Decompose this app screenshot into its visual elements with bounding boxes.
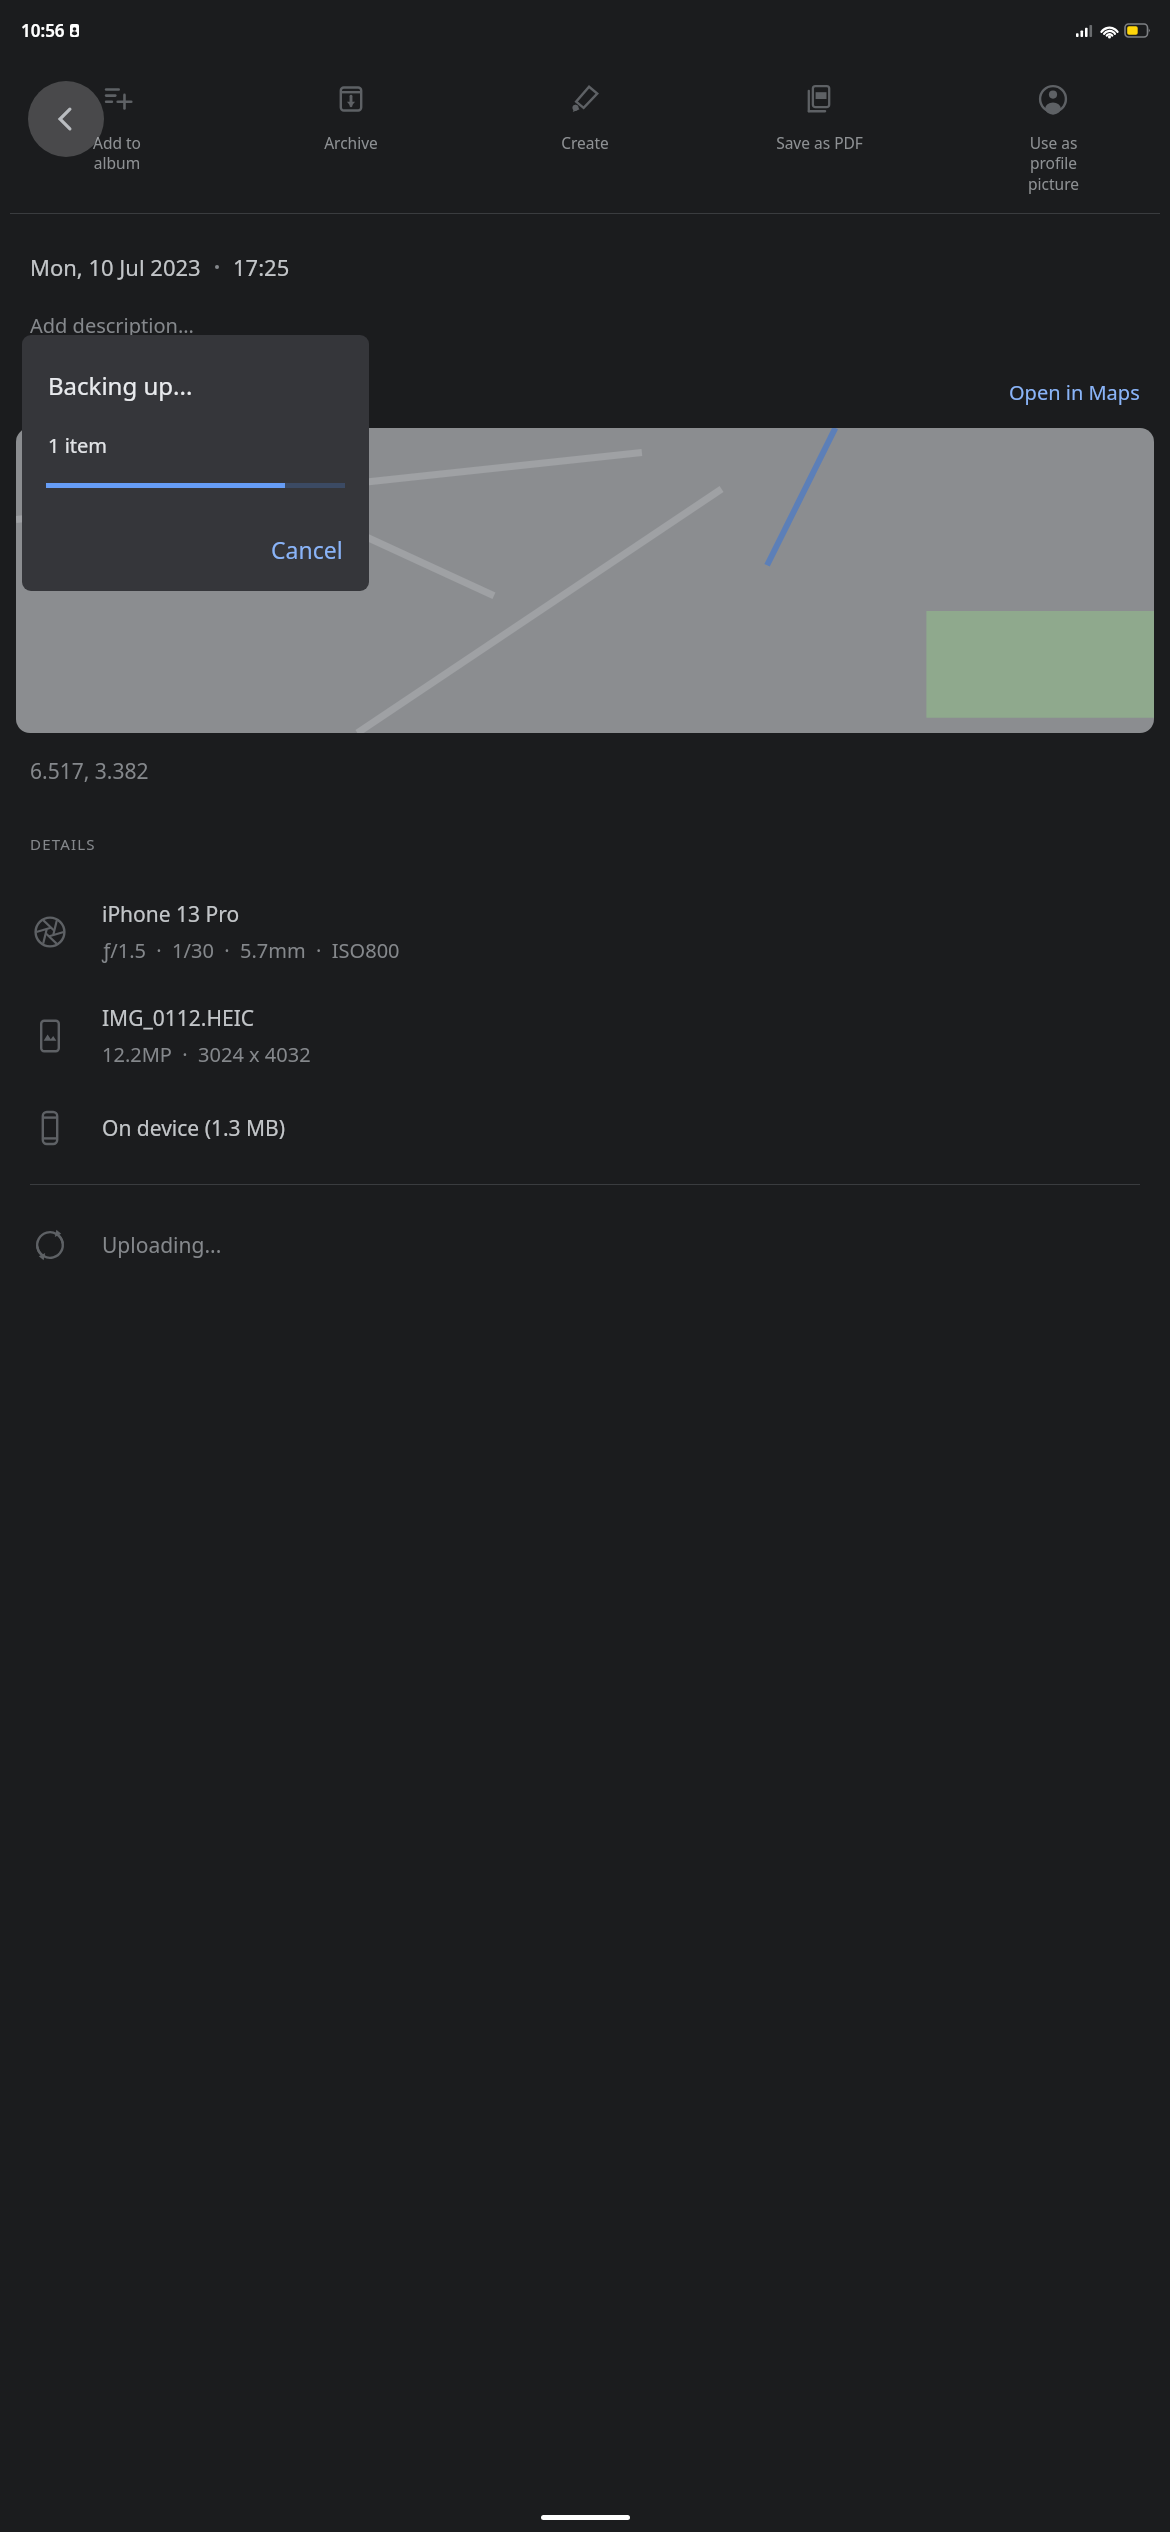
button[interactable]: Open in Maps [1009, 379, 1140, 406]
staticText: 12.2MP · 3024 x 4032 [102, 1041, 311, 1068]
button[interactable]: Create [468, 68, 702, 153]
staticText: Cancel [271, 534, 343, 565]
button[interactable]: iPhone 13 Pro [0, 892, 1170, 972]
button[interactable]: Cancel [257, 524, 357, 575]
staticText: Create [561, 132, 609, 153]
staticText: iPhone 13 Pro [102, 900, 240, 929]
staticText: IMG_0112.HEIC [102, 1004, 255, 1033]
staticText: 10:56 [21, 19, 65, 42]
button[interactable]: Mon, 10 Jul 2023 [0, 240, 1170, 294]
staticText: 6.517, 3.382 [30, 757, 149, 786]
staticText: ƒ/1.5 · 1/30 · 5.7mm · ISO800 [102, 937, 400, 964]
staticText: 17:25 [233, 252, 290, 282]
staticText: LOCATION [30, 383, 114, 403]
button[interactable]: Back [28, 81, 104, 157]
staticText: 1 item [48, 432, 107, 459]
staticText: Uploading... [102, 1231, 222, 1260]
staticText: DETAILS [30, 834, 96, 854]
staticText: Archive [324, 132, 378, 153]
button[interactable]: Add to album [0, 68, 234, 174]
staticText: Save as PDF [776, 132, 863, 153]
button[interactable]: Archive [234, 68, 468, 153]
staticText: Add to album [93, 132, 141, 174]
button[interactable]: IMG_0112.HEIC [0, 996, 1170, 1076]
button[interactable]: On device (1.3 MB) [0, 1100, 1170, 1156]
staticText: Use as profile picture [1028, 132, 1079, 195]
button[interactable]: Uploading... [0, 1217, 1170, 1273]
staticText: Mon, 10 Jul 2023 [30, 252, 201, 282]
staticText: Open in Maps [1009, 379, 1140, 406]
button[interactable] [16, 428, 1154, 733]
staticText: Add description... [30, 312, 194, 339]
staticText: Backing up... [48, 369, 193, 402]
button[interactable]: Add description... [0, 300, 1170, 351]
button[interactable]: Use as profile picture [936, 68, 1170, 195]
staticText: On device (1.3 MB) [102, 1114, 286, 1143]
button[interactable]: Save as PDF [702, 68, 936, 153]
